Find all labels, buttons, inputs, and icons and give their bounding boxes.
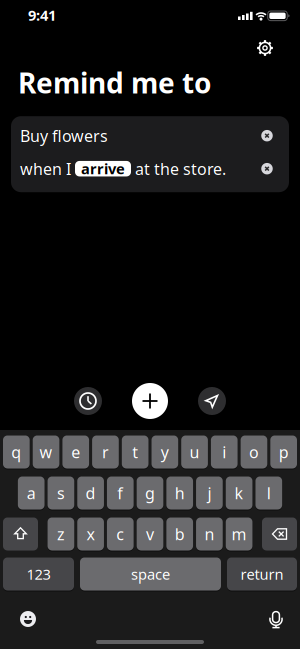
staticText: u [190, 441, 200, 463]
button[interactable]: n [196, 517, 223, 551]
staticText: w [40, 441, 53, 463]
staticText: o [249, 441, 259, 463]
button[interactable]: return [227, 557, 297, 591]
button[interactable]: o [241, 435, 267, 469]
button[interactable]: Shift [3, 517, 38, 550]
staticText: e [71, 441, 80, 463]
button[interactable]: c [107, 517, 134, 551]
button[interactable]: z [48, 517, 74, 551]
staticText: Remind me to [18, 64, 212, 101]
staticText: a [27, 482, 36, 504]
button[interactable]: Clear [257, 126, 277, 146]
button[interactable]: space [80, 557, 221, 591]
staticText: s [57, 482, 65, 504]
button[interactable]: Remind at a time [74, 387, 102, 415]
staticText: x [87, 523, 95, 545]
button[interactable]: w [33, 435, 59, 469]
button[interactable]: i [211, 435, 238, 469]
button[interactable]: Remind at a place [198, 387, 226, 415]
button[interactable]: Add reminder [132, 383, 168, 419]
staticText: i [222, 441, 226, 463]
button[interactable]: q [3, 435, 30, 469]
button[interactable]: k [226, 476, 252, 510]
button[interactable]: u [181, 435, 208, 469]
button[interactable]: x [77, 517, 104, 551]
button[interactable]: f [107, 476, 134, 510]
staticText: t [132, 441, 138, 463]
button[interactable]: s [48, 476, 74, 510]
staticText: arrive [81, 159, 125, 178]
button[interactable]: Emoji [16, 607, 40, 631]
staticText: n [204, 523, 214, 545]
staticText: p [279, 441, 289, 463]
button[interactable]: arrive [75, 161, 131, 176]
button[interactable]: v [137, 517, 163, 551]
staticText: z [57, 523, 65, 545]
button[interactable]: m [226, 517, 252, 551]
button[interactable]: Dictate [264, 608, 288, 632]
staticText: c [116, 523, 124, 545]
button[interactable]: d [77, 476, 104, 510]
button[interactable]: b [166, 517, 193, 551]
button[interactable]: Delete [262, 517, 297, 550]
staticText: y [161, 441, 169, 463]
button[interactable]: p [270, 435, 297, 469]
staticText: space [131, 564, 170, 584]
button[interactable]: Clear [257, 159, 277, 179]
staticText: b [175, 523, 185, 545]
button[interactable]: j [196, 476, 223, 510]
button[interactable]: r [92, 435, 119, 469]
staticText: d [86, 482, 96, 504]
staticText: return [240, 564, 283, 584]
staticText: m [232, 523, 247, 545]
button[interactable]: e [62, 435, 89, 469]
button[interactable]: a [18, 476, 45, 510]
staticText: 123 [26, 564, 50, 584]
staticText: at the store. [131, 158, 226, 179]
staticText: f [117, 482, 123, 504]
button[interactable]: y [151, 435, 178, 469]
staticText: k [235, 482, 244, 504]
staticText: q [11, 441, 21, 463]
staticText: r [102, 441, 109, 463]
staticText: j [207, 482, 211, 504]
button[interactable]: l [255, 476, 282, 510]
staticText: 9:41 [28, 5, 56, 25]
button[interactable]: Settings [251, 38, 279, 58]
button[interactable]: g [137, 476, 163, 510]
staticText: g [145, 482, 155, 504]
staticText: when I [20, 158, 75, 179]
staticText: v [146, 523, 154, 545]
button[interactable]: 123 [3, 557, 74, 591]
button[interactable]: t [122, 435, 148, 469]
staticText: Buy flowers [20, 125, 108, 146]
staticText: h [175, 482, 185, 504]
staticText: l [267, 482, 271, 504]
button[interactable]: h [166, 476, 193, 510]
